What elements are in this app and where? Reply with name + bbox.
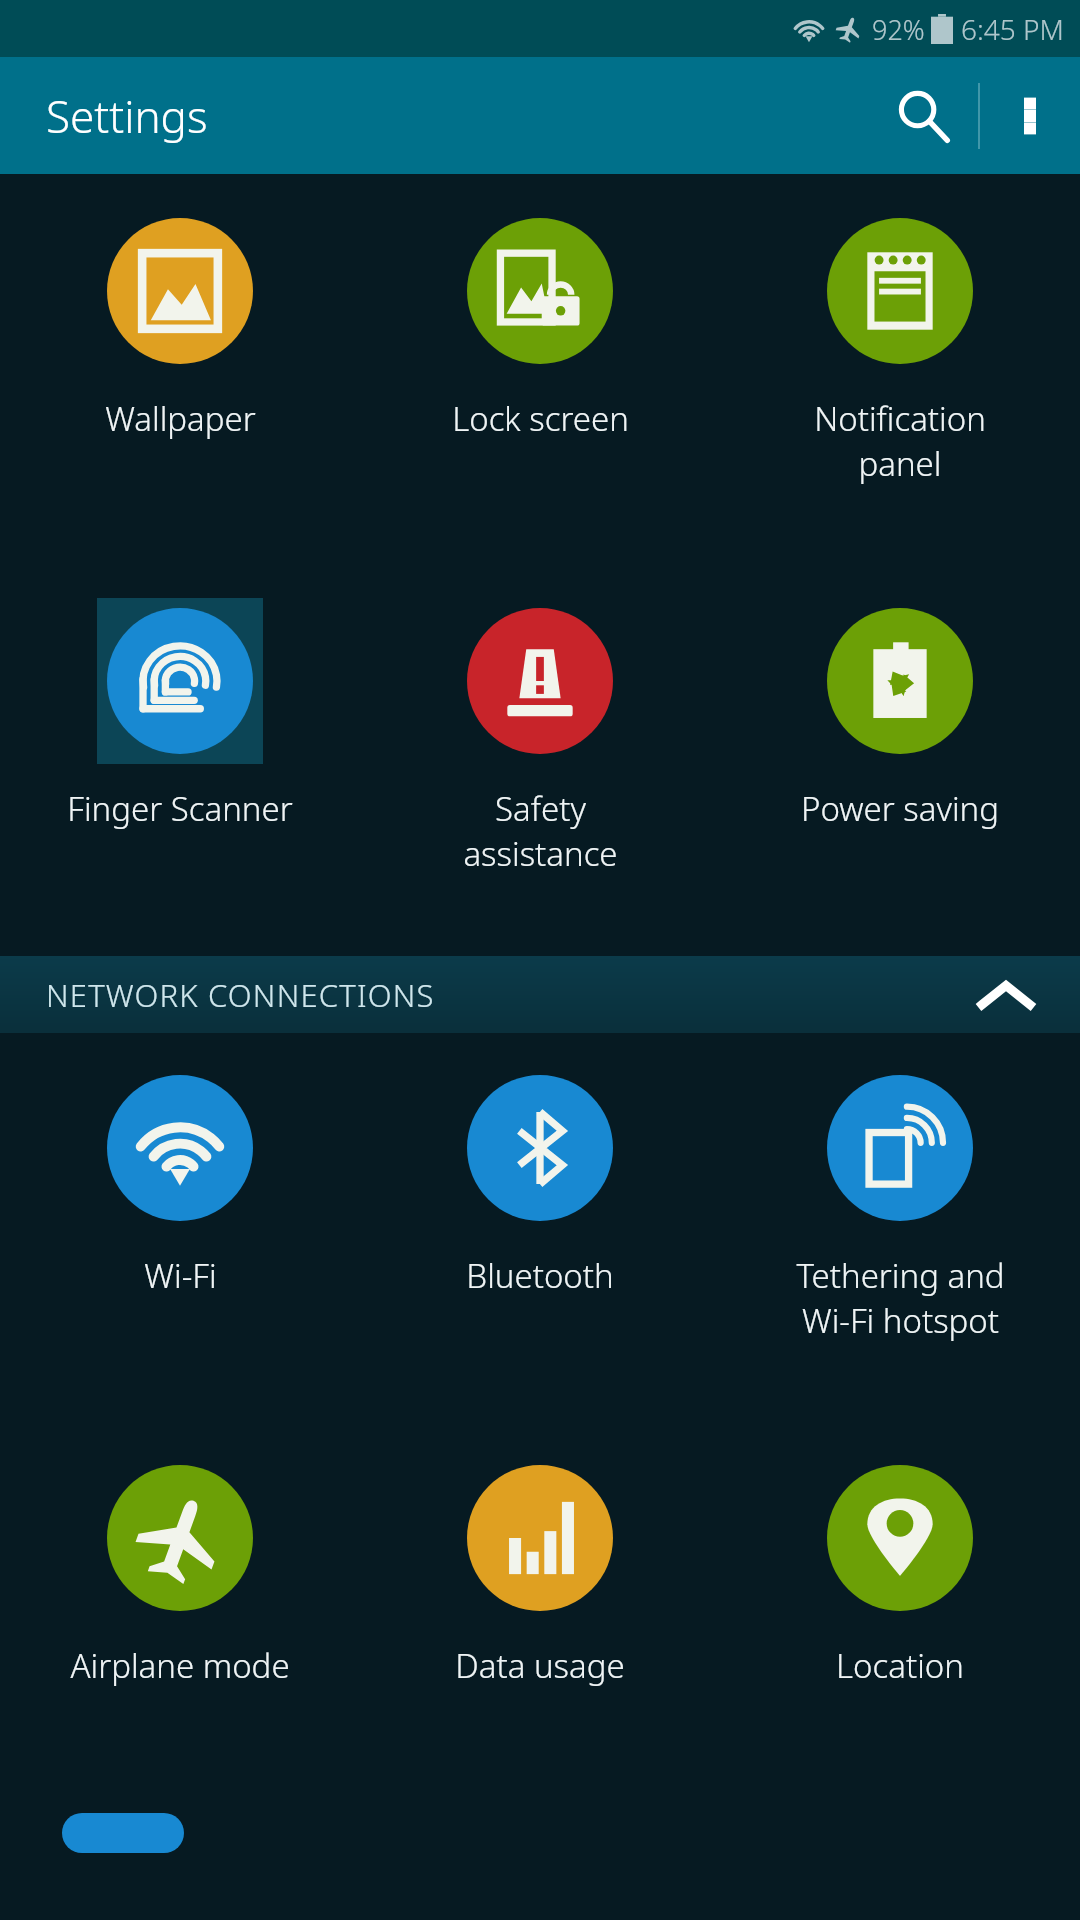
staticText: NETWORK CONNECTIONS — [46, 974, 435, 1016]
button[interactable]: Data usage — [360, 1423, 720, 1813]
button[interactable]: Tethering and Wi-Fi hotspot — [720, 1033, 1080, 1423]
staticText: Lock screen — [452, 396, 629, 441]
button[interactable]: Power saving — [720, 566, 1080, 956]
staticText: Location — [836, 1643, 964, 1688]
button[interactable]: Location — [720, 1423, 1080, 1813]
staticText: Finger Scanner — [67, 786, 293, 831]
button[interactable]: Wallpaper — [0, 176, 360, 566]
button[interactable]: Airplane mode — [0, 1423, 360, 1813]
staticText: Power saving — [801, 786, 999, 831]
button[interactable]: Wi-Fi — [0, 1033, 360, 1423]
staticText: Data usage — [455, 1643, 625, 1688]
button[interactable]: Finger Scanner — [0, 566, 360, 956]
staticText: Bluetooth — [466, 1253, 614, 1298]
staticText: Notification panel — [814, 396, 986, 485]
button[interactable]: More options — [980, 66, 1080, 166]
button[interactable]: Lock screen — [360, 176, 720, 566]
button[interactable]: Search — [868, 61, 978, 171]
staticText: Wallpaper — [105, 396, 256, 441]
button[interactable]: Notification panel — [720, 176, 1080, 566]
staticText: Wi-Fi — [144, 1253, 217, 1298]
staticText: 6:45 PM — [961, 10, 1064, 48]
button[interactable]: Bluetooth — [360, 1033, 720, 1423]
staticText: Airplane mode — [70, 1643, 290, 1688]
staticText: Settings — [46, 86, 208, 146]
staticText: Tethering and Wi-Fi hotspot — [796, 1253, 1005, 1342]
button[interactable]: Safety assistance — [360, 566, 720, 956]
staticText: Safety assistance — [463, 786, 618, 875]
staticText: 92% — [872, 11, 925, 48]
button[interactable]: NETWORK CONNECTIONS — [0, 956, 1080, 1033]
